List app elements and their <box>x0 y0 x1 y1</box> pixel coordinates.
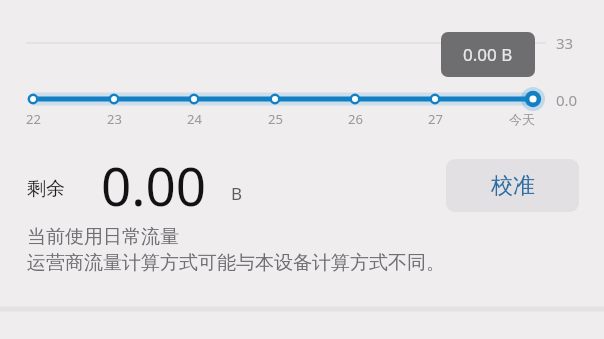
staticText: 26 <box>348 110 363 128</box>
staticText: 24 <box>187 110 202 128</box>
staticText: 0.00 <box>101 149 207 221</box>
staticText: 校准 <box>491 172 535 200</box>
button[interactable]: 0.00 B <box>441 32 535 77</box>
staticText: 25 <box>268 110 283 128</box>
button[interactable]: 校准 <box>446 159 579 212</box>
staticText: 剩余 <box>27 177 65 201</box>
staticText: 22 <box>26 110 41 128</box>
staticText: 当前使用日常流量 <box>27 225 179 249</box>
staticText: 今天 <box>509 111 535 127</box>
button[interactable]: Daily data usage chart <box>12 28 552 128</box>
staticText: 33 <box>556 33 574 53</box>
staticText: 运营商流量计算方式可能与本设备计算方式不同。 <box>27 251 445 275</box>
staticText: 23 <box>107 110 122 128</box>
staticText: 27 <box>428 110 443 128</box>
staticText: 0.00 B <box>463 43 513 66</box>
staticText: 0.0 <box>556 90 578 110</box>
staticText: B <box>231 182 243 205</box>
